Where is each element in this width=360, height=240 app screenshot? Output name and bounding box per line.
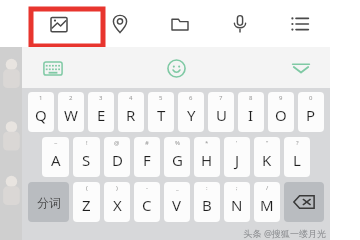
staticText: % <box>175 139 180 147</box>
staticText: ~ <box>54 139 58 147</box>
button[interactable]: - <box>134 182 160 222</box>
staticText: F <box>143 150 151 170</box>
staticText: : <box>206 184 208 192</box>
staticText: * <box>205 139 209 147</box>
staticText: ? <box>296 139 299 147</box>
button[interactable]: Backspace <box>284 182 324 222</box>
button[interactable]: % <box>164 137 190 177</box>
button[interactable]: Files <box>150 0 210 47</box>
staticText: J <box>235 150 240 170</box>
button[interactable]: ~ <box>42 137 69 177</box>
staticText: N <box>231 195 243 215</box>
staticText: B <box>202 195 212 215</box>
staticText: P <box>306 105 316 125</box>
button[interactable]: 1 <box>28 92 54 132</box>
staticText: M <box>260 195 274 215</box>
staticText: ; <box>236 184 238 192</box>
staticText: 2 <box>69 94 73 102</box>
staticText: ( <box>86 184 88 192</box>
button[interactable]: 分词 <box>28 182 69 222</box>
staticText: Z <box>82 195 91 215</box>
staticText: L <box>293 150 301 170</box>
staticText: 头条 @搜狐一缕月光 <box>243 227 326 239</box>
button[interactable]: : <box>194 182 220 222</box>
staticText: H <box>201 150 213 170</box>
button[interactable]: ( <box>73 182 100 222</box>
staticText: / <box>266 184 269 192</box>
button[interactable]: Keyboard <box>38 53 68 83</box>
staticText: @ <box>114 139 120 147</box>
button[interactable]: 4 <box>118 92 144 132</box>
button[interactable]: Collapse keyboard <box>286 53 316 83</box>
staticText: " <box>266 139 269 147</box>
button[interactable]: * <box>194 137 220 177</box>
staticText: E <box>97 105 106 125</box>
staticText: C <box>142 195 152 215</box>
staticText: ) <box>116 184 118 192</box>
button[interactable]: Location <box>89 0 150 47</box>
staticText: 7 <box>219 94 223 102</box>
staticText: D <box>112 150 123 170</box>
staticText: ! <box>86 139 88 147</box>
staticText: W <box>64 105 78 125</box>
staticText: Q <box>35 105 47 125</box>
button[interactable]: Voice <box>210 0 270 47</box>
button[interactable]: ! <box>73 137 100 177</box>
staticText: I <box>248 105 254 125</box>
button[interactable]: Image <box>28 0 89 47</box>
staticText: A <box>51 150 61 170</box>
staticText: X <box>113 195 122 215</box>
staticText: V <box>172 195 182 215</box>
button[interactable]: 2 <box>58 92 84 132</box>
staticText: 分词 <box>37 195 61 210</box>
staticText: T <box>157 105 166 125</box>
staticText: G <box>172 150 183 170</box>
staticText: 9 <box>279 94 283 102</box>
staticText: 1 <box>39 94 43 102</box>
button[interactable]: # <box>134 137 160 177</box>
staticText: 8 <box>249 94 253 102</box>
staticText: Y <box>187 105 196 125</box>
button[interactable]: 8 <box>238 92 264 132</box>
button[interactable]: Emoji <box>161 53 191 83</box>
staticText: S <box>82 150 91 170</box>
button[interactable]: ' <box>224 137 250 177</box>
staticText: K <box>262 150 272 170</box>
staticText: O <box>275 105 287 125</box>
staticText: 3 <box>99 94 103 102</box>
button[interactable]: 5 <box>148 92 174 132</box>
button[interactable]: " <box>254 137 280 177</box>
button[interactable]: List <box>270 0 330 47</box>
staticText: 6 <box>189 94 193 102</box>
button[interactable]: ; <box>224 182 250 222</box>
staticText: R <box>126 105 136 125</box>
button[interactable]: 0 <box>298 92 324 132</box>
button[interactable]: 7 <box>208 92 234 132</box>
staticText: 5 <box>159 94 163 102</box>
staticText: # <box>145 139 149 147</box>
button[interactable]: _ <box>164 182 190 222</box>
button[interactable]: / <box>254 182 280 222</box>
staticText: 0 <box>309 94 313 102</box>
staticText: 4 <box>129 94 133 102</box>
button[interactable]: @ <box>104 137 130 177</box>
staticText: - <box>146 184 148 192</box>
button[interactable]: 3 <box>88 92 114 132</box>
button[interactable]: 6 <box>178 92 204 132</box>
staticText: ' <box>236 139 238 147</box>
staticText: U <box>216 105 227 125</box>
button[interactable]: 9 <box>268 92 294 132</box>
staticText: _ <box>176 184 179 192</box>
button[interactable]: ) <box>104 182 130 222</box>
button[interactable]: ? <box>284 137 310 177</box>
